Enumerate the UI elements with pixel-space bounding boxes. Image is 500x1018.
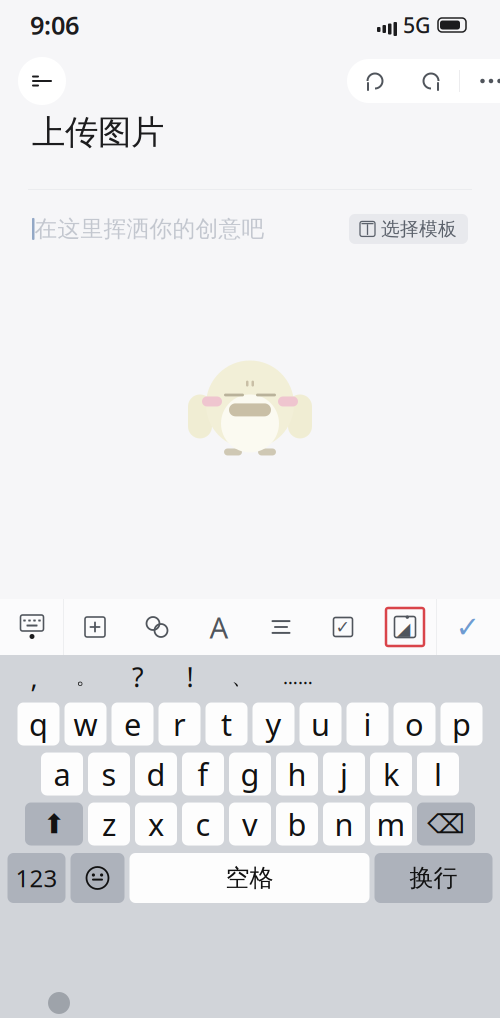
- staticText: o: [405, 704, 424, 744]
- button[interactable]: g: [229, 752, 271, 795]
- staticText: 在这里挥洒你的创意吧: [34, 215, 264, 243]
- button[interactable]: r: [158, 702, 200, 745]
- staticText: b: [287, 804, 306, 844]
- button[interactable]: v: [229, 802, 271, 845]
- button[interactable]: o: [393, 702, 435, 745]
- button[interactable]: u: [299, 702, 341, 745]
- staticText: 123: [15, 862, 57, 894]
- button[interactable]: x: [135, 802, 177, 845]
- button[interactable]: e: [111, 702, 153, 745]
- button[interactable]: j: [323, 752, 365, 795]
- staticText: z: [102, 804, 116, 844]
- staticText: v: [242, 804, 258, 844]
- button[interactable]: Redo: [403, 59, 459, 103]
- button[interactable]: b: [276, 802, 318, 845]
- button[interactable]: 选择模板: [349, 214, 468, 244]
- staticText: 换行: [409, 863, 457, 893]
- staticText: x: [148, 804, 164, 844]
- staticText: 。: [76, 665, 96, 689]
- staticText: c: [195, 804, 210, 844]
- button[interactable]: s: [88, 752, 130, 795]
- staticText: ……: [283, 665, 313, 689]
- staticText: h: [287, 754, 306, 794]
- staticText: j: [340, 754, 348, 794]
- staticText: n: [334, 804, 353, 844]
- button[interactable]: Done: [437, 599, 499, 655]
- staticText: s: [101, 754, 116, 794]
- staticText: a: [53, 754, 70, 794]
- staticText: ?: [132, 659, 144, 695]
- button[interactable]: 空格: [129, 853, 369, 903]
- button[interactable]: Undo: [347, 59, 403, 103]
- staticText: 5G: [403, 11, 431, 39]
- staticText: ✓: [455, 610, 480, 644]
- button[interactable]: Insert block: [64, 599, 126, 655]
- button[interactable]: c: [182, 802, 224, 845]
- button[interactable]: q: [17, 702, 59, 745]
- button[interactable]: Hide keyboard: [1, 599, 63, 655]
- staticText: ✓: [335, 617, 350, 637]
- staticText: p: [452, 704, 471, 744]
- staticText: k: [383, 754, 399, 794]
- staticText: t: [221, 704, 232, 744]
- button[interactable]: w: [64, 702, 106, 745]
- staticText: 选择模板: [381, 217, 457, 240]
- staticText: i: [363, 704, 371, 744]
- staticText: l: [434, 754, 442, 794]
- button[interactable]: 换行: [374, 853, 492, 903]
- button[interactable]: Text style: [188, 599, 250, 655]
- button[interactable]: 、: [216, 656, 268, 698]
- staticText: 9:06: [30, 8, 79, 42]
- button[interactable]: z: [88, 802, 130, 845]
- button[interactable]: 。: [60, 656, 112, 698]
- staticText: d: [146, 754, 165, 794]
- button[interactable]: List: [250, 599, 312, 655]
- button[interactable]: Delete: [417, 802, 475, 845]
- button[interactable]: a: [41, 752, 83, 795]
- button[interactable]: y: [252, 702, 294, 745]
- button[interactable]: f: [182, 752, 224, 795]
- staticText: !: [186, 659, 193, 695]
- staticText: g: [240, 754, 259, 794]
- staticText: ⬆: [43, 809, 65, 839]
- button[interactable]: k: [370, 752, 412, 795]
- staticText: 上传图片: [32, 112, 164, 153]
- staticText: e: [124, 704, 141, 744]
- button[interactable]: ……: [268, 656, 328, 698]
- button[interactable]: ?: [112, 656, 164, 698]
- button[interactable]: l: [417, 752, 459, 795]
- staticText: 空格: [225, 863, 273, 893]
- button[interactable]: d: [135, 752, 177, 795]
- staticText: ◢: [397, 619, 410, 639]
- button[interactable]: p: [440, 702, 482, 745]
- staticText: m: [376, 804, 405, 844]
- button[interactable]: 123: [7, 853, 65, 903]
- button[interactable]: Back: [18, 57, 66, 105]
- button[interactable]: Insert image: [374, 599, 436, 655]
- button[interactable]: Emoji: [70, 853, 124, 903]
- button[interactable]: ,: [8, 656, 60, 698]
- staticText: ,: [30, 659, 37, 695]
- staticText: A: [209, 607, 228, 646]
- button[interactable]: t: [205, 702, 247, 745]
- staticText: ⌫: [427, 809, 465, 839]
- button[interactable]: n: [323, 802, 365, 845]
- staticText: u: [311, 704, 330, 744]
- button[interactable]: h: [276, 752, 318, 795]
- button[interactable]: m: [370, 802, 412, 845]
- button[interactable]: More options: [460, 59, 500, 103]
- staticText: 、: [231, 664, 252, 690]
- staticText: r: [173, 704, 186, 744]
- staticText: y: [265, 704, 281, 744]
- button[interactable]: Checklist: [312, 599, 374, 655]
- button[interactable]: i: [346, 702, 388, 745]
- staticText: q: [29, 704, 48, 744]
- button[interactable]: Insert link: [126, 599, 188, 655]
- staticText: f: [197, 754, 208, 794]
- staticText: w: [73, 704, 97, 744]
- button[interactable]: Shift: [25, 802, 83, 845]
- button[interactable]: !: [164, 656, 216, 698]
